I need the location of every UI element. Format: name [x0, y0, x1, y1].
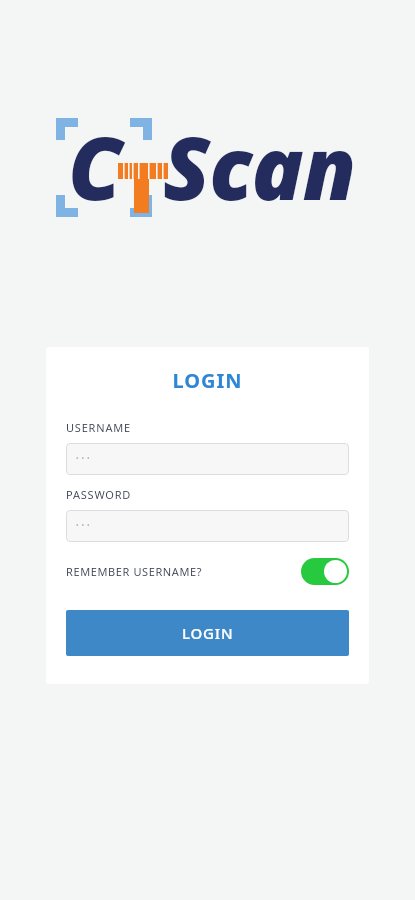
button[interactable]: • • •	[66, 510, 349, 542]
staticText: LOGIN	[46, 367, 369, 394]
staticText: • • •	[76, 454, 91, 464]
staticText: REMEMBER USERNAME?	[66, 564, 203, 579]
button[interactable]: REMEMBER USERNAME?	[66, 556, 349, 586]
button[interactable]: Remember username toggle	[301, 558, 349, 585]
staticText: LOGIN	[182, 623, 234, 643]
staticText: PASSWORD	[66, 487, 132, 502]
staticText: USERNAME	[66, 420, 131, 435]
staticText: C	[68, 108, 123, 225]
staticText: Scan	[163, 108, 356, 225]
button[interactable]: LOGIN	[66, 610, 349, 656]
staticText: • • •	[76, 521, 91, 531]
button[interactable]: • • •	[66, 443, 349, 475]
